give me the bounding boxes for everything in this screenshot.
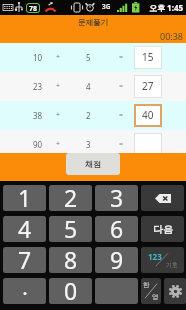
button[interactable]: 7 xyxy=(3,247,46,273)
staticText: 3 xyxy=(86,139,91,150)
button[interactable]: 23 xyxy=(0,72,186,101)
staticText: 4 xyxy=(86,81,91,92)
staticText: 90 xyxy=(33,139,43,150)
button[interactable]: 9 xyxy=(95,247,138,273)
button[interactable]: Space xyxy=(95,278,138,304)
staticText: 23 xyxy=(33,81,43,92)
button[interactable]: Settings xyxy=(164,278,186,304)
button[interactable]: 8 xyxy=(49,247,92,273)
button[interactable]: Language xyxy=(141,278,161,304)
button[interactable]: 3 xyxy=(95,185,138,211)
staticText: 15 xyxy=(142,50,154,64)
button[interactable]: 1 xyxy=(3,185,46,211)
staticText: 영 xyxy=(152,293,159,301)
button[interactable]: Decimal point xyxy=(3,278,46,304)
staticText: 6 xyxy=(110,216,124,239)
staticText: 123 xyxy=(148,251,162,262)
button[interactable]: 6 xyxy=(95,216,138,242)
staticText: 한 xyxy=(143,281,150,289)
staticText: 10 xyxy=(33,52,43,63)
button[interactable]: 5 xyxy=(49,216,92,242)
staticText: 문제풀기 xyxy=(78,18,108,27)
button[interactable]: 0 xyxy=(49,278,92,304)
staticText: 27 xyxy=(142,79,154,93)
staticText: 78 xyxy=(29,4,38,12)
staticText: + xyxy=(56,139,61,149)
staticText: 8 xyxy=(64,247,78,270)
staticText: + xyxy=(56,52,61,62)
staticText: 오후 1:45 xyxy=(149,2,184,13)
button[interactable]: Next xyxy=(141,216,184,242)
staticText: 2 xyxy=(64,185,78,208)
staticText: 00:38 xyxy=(160,30,184,42)
staticText: = xyxy=(119,52,124,62)
button[interactable]: 4 xyxy=(3,216,46,242)
staticText: = xyxy=(119,81,124,91)
button[interactable]: Backspace xyxy=(141,185,184,211)
staticText: 0 xyxy=(64,278,78,301)
staticText: 7 xyxy=(18,247,32,270)
button[interactable]: 2 xyxy=(49,185,92,211)
staticText: 3G xyxy=(102,2,111,11)
button[interactable]: 38 xyxy=(0,101,186,130)
staticText: = xyxy=(119,139,124,149)
staticText: 1 xyxy=(18,185,32,208)
staticText: = xyxy=(119,110,124,120)
staticText: 5 xyxy=(86,52,91,63)
staticText: 채점 xyxy=(85,159,101,169)
button[interactable]: 채점 xyxy=(66,153,120,175)
button[interactable]: 90 xyxy=(0,130,186,159)
staticText: 3 xyxy=(110,185,124,208)
staticText: 9 xyxy=(110,247,124,270)
staticText: 2 xyxy=(86,110,91,121)
staticText: 다음 xyxy=(153,223,173,236)
staticText: 40 xyxy=(142,108,154,122)
button[interactable]: 10 xyxy=(0,43,186,72)
staticText: 기호 xyxy=(166,261,178,269)
staticText: 38 xyxy=(33,110,43,121)
staticText: 4 xyxy=(18,216,32,239)
staticText: 5 xyxy=(64,216,78,239)
staticText: + xyxy=(56,81,61,91)
button[interactable]: Symbols xyxy=(141,247,184,273)
staticText: + xyxy=(56,110,61,120)
